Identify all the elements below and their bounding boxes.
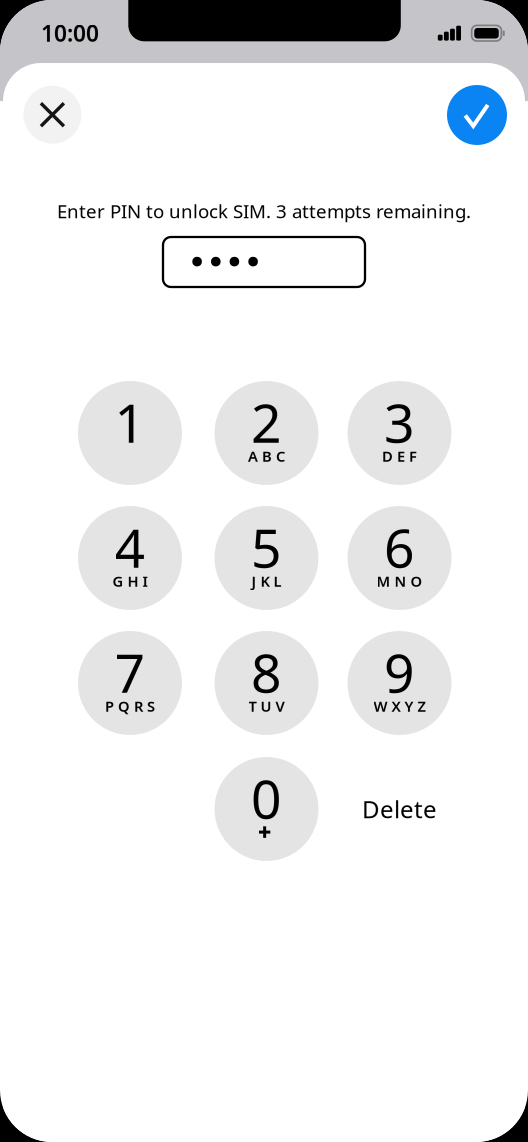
- button[interactable]: 1: [78, 381, 182, 485]
- staticText: A B C: [248, 446, 285, 466]
- staticText: 2: [251, 387, 282, 457]
- staticText: M N O: [376, 571, 422, 591]
- button[interactable]: 9: [347, 631, 451, 735]
- staticText: Enter PIN to unlock SIM. 3 attempts rema…: [57, 199, 471, 223]
- staticText: T U V: [248, 696, 284, 716]
- button[interactable]: Delete: [334, 757, 464, 861]
- staticText: G H I: [112, 571, 147, 591]
- staticText: 3: [384, 387, 415, 457]
- staticText: 10:00: [41, 18, 99, 48]
- button[interactable]: 2: [214, 381, 318, 485]
- staticText: 8: [251, 637, 282, 707]
- staticText: P Q R S: [105, 696, 155, 716]
- button[interactable]: 3: [347, 381, 451, 485]
- staticText: 7: [114, 637, 145, 707]
- staticText: 9: [384, 637, 415, 707]
- button[interactable]: 6: [347, 506, 451, 610]
- staticText: 0: [251, 763, 282, 833]
- button[interactable]: 0: [214, 757, 318, 861]
- button[interactable]: 4: [78, 506, 182, 610]
- button[interactable]: Close: [23, 86, 81, 144]
- staticText: J K L: [251, 571, 281, 591]
- button[interactable]: Confirm PIN: [447, 85, 507, 145]
- button[interactable]: 7: [78, 631, 182, 735]
- button[interactable]: 8: [214, 631, 318, 735]
- staticText: D E F: [382, 446, 417, 466]
- staticText: 6: [384, 512, 415, 582]
- staticText: 1: [114, 387, 145, 457]
- button[interactable]: 5: [214, 506, 318, 610]
- staticText: Delete: [362, 793, 437, 825]
- staticText: W X Y Z: [373, 696, 425, 716]
- staticText: 4: [114, 512, 145, 582]
- staticText: 5: [251, 512, 282, 582]
